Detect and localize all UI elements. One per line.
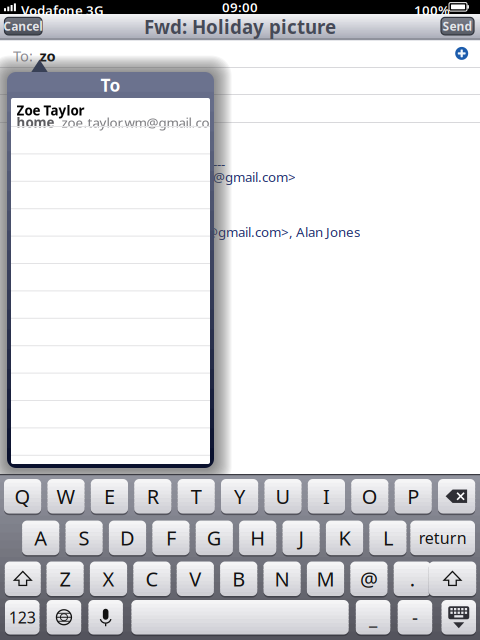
staticText: Vodafone 3G bbox=[21, 1, 104, 19]
staticText: @ bbox=[360, 565, 378, 592]
staticText: D bbox=[120, 525, 135, 551]
staticText: Cancel bbox=[3, 18, 43, 34]
staticText: M bbox=[316, 565, 334, 592]
staticText: return bbox=[419, 527, 467, 548]
staticText: P bbox=[407, 483, 419, 510]
staticText: zo bbox=[39, 46, 55, 65]
button[interactable]: S bbox=[65, 521, 103, 555]
button[interactable]: U bbox=[264, 479, 302, 513]
button[interactable]: I bbox=[308, 479, 345, 513]
button[interactable]: return bbox=[410, 521, 475, 555]
button[interactable]: @ bbox=[350, 561, 387, 596]
button[interactable]: Cancel bbox=[4, 17, 42, 35]
staticText: C bbox=[145, 565, 158, 592]
staticText: B bbox=[232, 565, 245, 592]
staticText: . bbox=[410, 565, 415, 592]
button[interactable] bbox=[47, 600, 81, 634]
button[interactable] bbox=[88, 600, 123, 634]
button[interactable] bbox=[438, 479, 475, 513]
button[interactable]: V bbox=[177, 561, 214, 596]
staticText: T bbox=[191, 483, 202, 510]
staticText: 100% bbox=[414, 1, 450, 19]
staticText: S bbox=[79, 525, 90, 551]
button[interactable]: Y bbox=[221, 479, 258, 513]
button[interactable]: M bbox=[307, 561, 344, 596]
staticText: K bbox=[338, 525, 350, 551]
button[interactable]: A bbox=[22, 521, 59, 555]
staticText: From: Zoe Taylor <zoe.taylor.wm@gmail.co… bbox=[14, 168, 296, 186]
button[interactable]: C bbox=[133, 561, 170, 596]
button[interactable]: Add contact bbox=[453, 44, 471, 62]
staticText: V bbox=[189, 565, 201, 592]
staticText: Q bbox=[15, 483, 31, 510]
staticText: Z bbox=[60, 565, 71, 592]
button[interactable] bbox=[429, 561, 476, 596]
staticText: L bbox=[383, 525, 393, 551]
button[interactable]: L bbox=[369, 521, 406, 555]
button[interactable]: X bbox=[90, 561, 127, 596]
staticText: To: bbox=[13, 46, 33, 65]
button[interactable]: T bbox=[178, 479, 215, 513]
button[interactable]: N bbox=[263, 561, 301, 596]
staticText: Y bbox=[234, 483, 245, 510]
button[interactable]: F bbox=[152, 521, 189, 555]
staticText: ---------- Forwarded message ---------- bbox=[14, 155, 225, 173]
staticText: To bbox=[100, 73, 120, 96]
staticText: home bbox=[16, 113, 54, 131]
staticText: 123 bbox=[9, 607, 36, 628]
staticText: N bbox=[275, 565, 290, 592]
button[interactable]: H bbox=[239, 521, 276, 555]
button[interactable]: R bbox=[134, 479, 171, 513]
button[interactable]: B bbox=[220, 561, 257, 596]
button[interactable]: W bbox=[47, 479, 85, 513]
staticText: Zoe Taylor bbox=[16, 101, 84, 119]
staticText bbox=[239, 610, 242, 624]
staticText: I bbox=[323, 483, 330, 510]
button[interactable]: . bbox=[394, 561, 431, 596]
button[interactable]: - bbox=[398, 600, 432, 634]
button[interactable]: _ bbox=[356, 600, 390, 634]
button[interactable]: G bbox=[196, 521, 233, 555]
staticText: U bbox=[275, 483, 290, 510]
staticText: G bbox=[207, 525, 222, 551]
button[interactable]: Q bbox=[4, 479, 41, 513]
staticText: H bbox=[250, 525, 265, 551]
staticText: Subject: Holiday picture bbox=[14, 196, 158, 214]
staticText: X bbox=[102, 565, 114, 592]
button[interactable]: J bbox=[282, 521, 320, 555]
staticText: R bbox=[147, 483, 159, 510]
button[interactable]: Send bbox=[441, 17, 474, 35]
button[interactable]: K bbox=[326, 521, 363, 555]
staticText: zoe.taylor.wm@gmail.com bbox=[61, 113, 221, 131]
button[interactable]: P bbox=[395, 479, 432, 513]
staticText: Fwd: Holiday picture bbox=[144, 14, 336, 39]
button[interactable] bbox=[131, 600, 349, 634]
button[interactable] bbox=[5, 561, 41, 596]
button[interactable]: 123 bbox=[5, 600, 39, 634]
staticText: To: Martin Ellis <martin.ellis.wm@gmail.… bbox=[14, 223, 360, 258]
button[interactable] bbox=[441, 600, 476, 634]
button[interactable]: Z bbox=[46, 561, 84, 596]
button[interactable]: O bbox=[351, 479, 388, 513]
staticText: Send bbox=[442, 18, 472, 34]
staticText: - bbox=[412, 605, 418, 630]
button[interactable]: D bbox=[109, 521, 146, 555]
staticText: 09:00 bbox=[222, 0, 258, 16]
staticText: J bbox=[299, 525, 304, 551]
staticText: A bbox=[34, 525, 47, 551]
staticText: W bbox=[56, 483, 75, 510]
button[interactable]: E bbox=[91, 479, 128, 513]
staticText: _ bbox=[369, 605, 377, 630]
staticText: O bbox=[362, 483, 378, 510]
staticText: E bbox=[104, 483, 115, 510]
staticText: F bbox=[166, 525, 176, 551]
